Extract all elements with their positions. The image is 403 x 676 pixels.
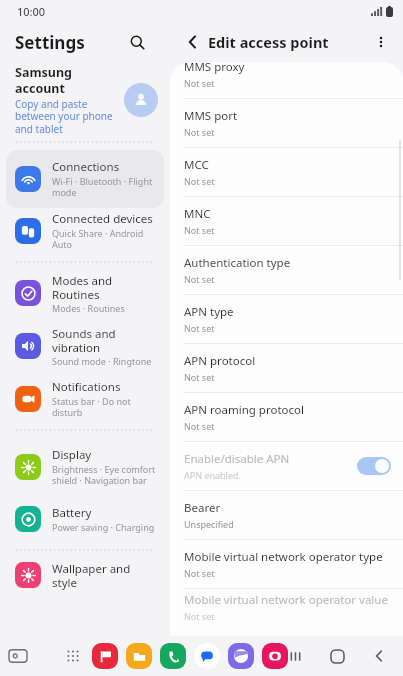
button[interactable]: My Files <box>126 643 152 669</box>
staticText: Unspecified <box>184 518 234 530</box>
button[interactable]: Bearer <box>170 491 403 539</box>
button[interactable]: All apps <box>60 643 86 669</box>
staticText: Battery <box>52 505 92 521</box>
staticText: APN type <box>184 304 234 320</box>
button[interactable]: Connected devices <box>6 208 164 254</box>
button[interactable]: Internet <box>228 643 254 669</box>
button[interactable]: Camera <box>262 643 288 669</box>
staticText: Not set <box>184 175 215 187</box>
button[interactable]: Back <box>363 640 395 672</box>
staticText: Wallpaper and style <box>52 561 156 590</box>
button[interactable]: MMS proxy <box>170 62 403 98</box>
button[interactable]: Sounds and vibration <box>6 316 164 376</box>
staticText: Display <box>52 447 92 463</box>
staticText: Not set <box>184 567 215 579</box>
staticText: Authentication type <box>184 255 291 271</box>
staticText: Not set <box>184 322 215 334</box>
staticText: Mobile virtual network operator type <box>184 549 383 565</box>
staticText: Not set <box>184 420 215 432</box>
button[interactable]: Recents preview <box>6 644 30 668</box>
staticText: Copy and paste between your phone and ta… <box>15 97 113 136</box>
staticText: Bearer <box>184 500 221 516</box>
staticText: Edit access point <box>208 32 329 52</box>
button[interactable]: Notes <box>92 643 118 669</box>
staticText: Not set <box>184 273 215 285</box>
button[interactable]: MNC <box>170 197 403 245</box>
staticText: APN enabled. <box>184 469 241 481</box>
button[interactable]: APN roaming protocol <box>170 393 403 441</box>
staticText: Not set <box>184 77 215 89</box>
button[interactable]: APN protocol <box>170 344 403 392</box>
button[interactable]: More options <box>368 29 394 55</box>
button[interactable]: Mobile virtual network operator value <box>170 589 403 624</box>
button[interactable]: Enable/disable APN toggle <box>357 457 391 475</box>
staticText: Not set <box>184 224 215 236</box>
staticText: MNC <box>184 206 211 222</box>
staticText: Samsung account <box>15 64 72 96</box>
button[interactable]: MCC <box>170 148 403 196</box>
staticText: MMS port <box>184 108 238 124</box>
staticText: Connections <box>52 159 120 175</box>
staticText: 10:00 <box>17 4 46 19</box>
staticText: Settings <box>15 31 85 54</box>
staticText: Sound mode · Ringtone <box>52 355 152 367</box>
staticText: Modes · Routines <box>52 302 125 314</box>
button[interactable]: Connections <box>6 150 164 208</box>
staticText: Notifications <box>52 379 121 395</box>
staticText: Enable/disable APN <box>184 451 290 467</box>
button[interactable]: Battery <box>6 496 164 542</box>
staticText: APN roaming protocol <box>184 402 304 418</box>
button[interactable]: Recents <box>279 640 311 672</box>
button[interactable]: Back <box>179 29 205 55</box>
button[interactable]: Home <box>321 640 353 672</box>
button[interactable]: APN type <box>170 295 403 343</box>
button[interactable]: Wallpaper and style <box>6 558 164 592</box>
button[interactable]: Messages <box>194 643 220 669</box>
staticText: Power saving · Charging <box>52 521 155 533</box>
staticText: Wi-Fi · Bluetooth · Flight mode <box>52 175 153 199</box>
button[interactable]: MMS port <box>170 99 403 147</box>
staticText: APN protocol <box>184 353 256 369</box>
button[interactable]: Phone <box>160 643 186 669</box>
button[interactable]: Authentication type <box>170 246 403 294</box>
staticText: Not set <box>184 371 215 383</box>
staticText: Brightness · Eye comfort shield · Naviga… <box>52 463 156 487</box>
staticText: Sounds and vibration <box>52 326 116 355</box>
button[interactable]: Modes and Routines <box>6 270 164 316</box>
button[interactable]: Samsung account <box>0 62 170 138</box>
staticText: Connected devices <box>52 211 153 227</box>
staticText: MCC <box>184 157 209 173</box>
staticText: Mobile virtual network operator value <box>184 592 388 608</box>
staticText: Quick Share · Android Auto <box>52 227 156 251</box>
button[interactable]: Search <box>122 27 152 57</box>
staticText: Status bar · Do not disturb <box>52 395 156 419</box>
staticText: Not set <box>184 126 215 138</box>
button[interactable]: Notifications <box>6 376 164 422</box>
staticText: Modes and Routines <box>52 273 156 302</box>
button[interactable]: Mobile virtual network operator type <box>170 540 403 588</box>
staticText: MMS proxy <box>184 62 245 75</box>
staticText: Not set <box>184 610 215 622</box>
button[interactable]: Display <box>6 438 164 496</box>
button[interactable]: Enable/disable APN <box>170 442 403 490</box>
